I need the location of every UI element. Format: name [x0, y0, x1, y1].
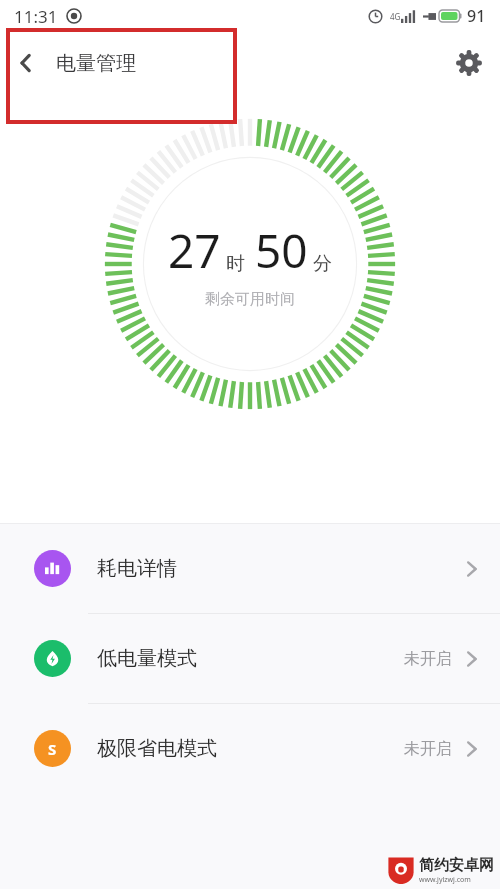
staticText: 分	[313, 252, 332, 276]
button[interactable]: 耗电详情	[0, 524, 500, 614]
staticText: 27	[168, 219, 221, 282]
button[interactable]: 低电量模式	[0, 614, 500, 704]
staticText: 未开启	[404, 649, 452, 669]
staticText: www.jylzwj.com	[419, 875, 471, 885]
staticText: 91	[467, 5, 486, 27]
staticText: 低电量模式	[97, 646, 197, 671]
staticText: 电量管理	[56, 51, 136, 76]
button[interactable]: Back	[0, 37, 52, 89]
staticText: 极限省电模式	[97, 736, 217, 761]
staticText: S	[48, 739, 57, 759]
staticText: 未开启	[404, 739, 452, 759]
button[interactable]: Settings	[438, 32, 500, 94]
staticText: 50	[255, 219, 308, 282]
staticText: 耗电详情	[97, 556, 177, 581]
staticText: 简约安卓网	[419, 856, 494, 875]
staticText: 时	[226, 252, 245, 276]
staticText: 剩余可用时间	[205, 290, 295, 309]
staticText: 4G	[390, 11, 401, 22]
button[interactable]: S	[0, 704, 500, 793]
staticText: 11:31	[14, 5, 58, 28]
